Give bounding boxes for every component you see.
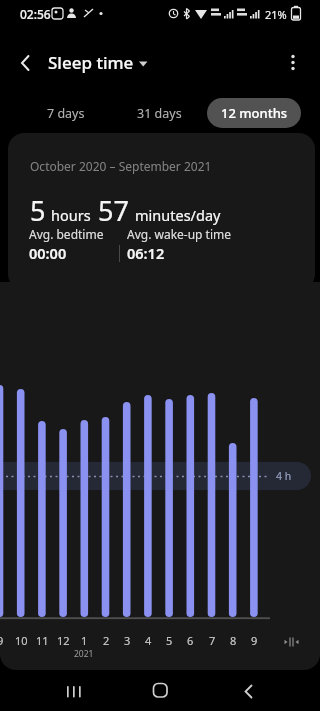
staticText: 2021 <box>74 648 94 660</box>
button[interactable] <box>281 48 305 78</box>
button[interactable] <box>54 676 94 706</box>
staticText: 57 <box>98 192 129 229</box>
staticText: 06:12 <box>127 243 165 263</box>
staticText: 31 days <box>137 105 182 122</box>
staticText: hours <box>51 205 91 225</box>
staticText: 12 <box>57 633 70 648</box>
staticText: 10 <box>15 633 28 648</box>
staticText: 9 <box>251 633 258 648</box>
button[interactable]: Sleep time <box>46 50 156 76</box>
staticText: 4 h <box>276 469 292 483</box>
staticText: 7 days <box>47 105 85 122</box>
staticText: 3 <box>124 633 131 648</box>
staticText: Avg. bedtime <box>29 226 104 242</box>
staticText: 4 <box>145 633 152 648</box>
button[interactable] <box>140 676 180 706</box>
button[interactable]: 12 months <box>207 98 301 128</box>
staticText: 5 <box>166 633 173 648</box>
staticText: October 2020 – September 2021 <box>30 158 212 174</box>
staticText: 1 <box>81 633 88 648</box>
staticText: 21% <box>265 7 287 22</box>
staticText: 9 <box>0 633 4 648</box>
button[interactable] <box>278 632 304 652</box>
staticText: 7 <box>209 633 216 648</box>
staticText: 11 <box>36 633 49 648</box>
button[interactable]: 31 days <box>123 100 195 126</box>
staticText: 6 <box>187 633 194 648</box>
staticText: 12 months <box>221 104 288 122</box>
staticText: 8 <box>230 633 237 648</box>
staticText: Avg. wake-up time <box>127 226 232 242</box>
staticText: Sleep time <box>48 51 134 74</box>
button[interactable]: 7 days <box>30 100 102 126</box>
staticText: 02:56 <box>20 6 51 22</box>
staticText: 00:00 <box>29 243 67 263</box>
staticText: 5 <box>30 192 46 229</box>
staticText: 2 <box>103 633 110 648</box>
staticText: minutes/day <box>135 205 221 225</box>
button[interactable] <box>228 676 268 706</box>
button[interactable] <box>8 48 40 78</box>
